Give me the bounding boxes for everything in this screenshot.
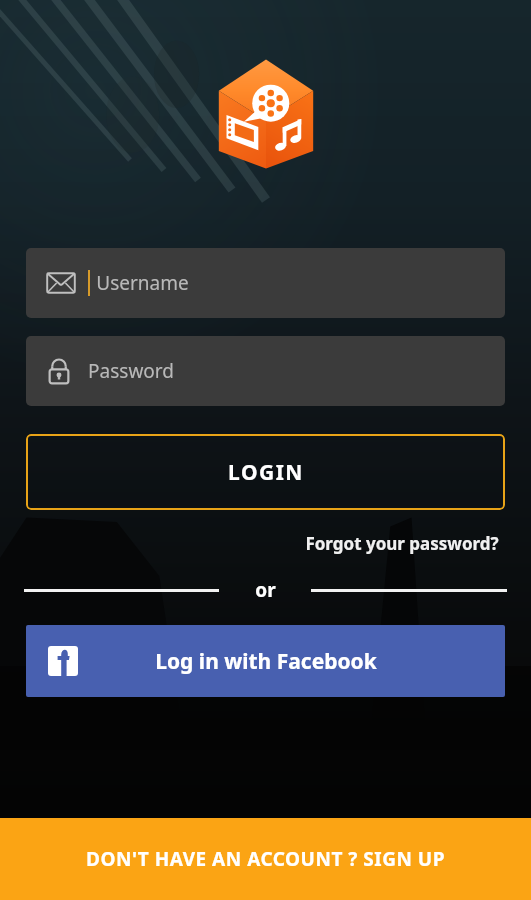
staticText: Forgot your password? <box>305 532 499 555</box>
staticText: or <box>255 577 276 603</box>
staticText: LOGIN <box>228 458 304 487</box>
staticText: Log in with Facebook <box>155 647 377 676</box>
staticText: Password <box>88 358 174 384</box>
button[interactable]: Log in with Facebook <box>26 625 505 697</box>
button[interactable]: Password <box>26 336 505 406</box>
staticText: Username <box>96 270 189 296</box>
button[interactable]: Forgot your password? <box>301 526 503 561</box>
button[interactable]: DON'T HAVE AN ACCOUNT ? SIGN UP <box>0 818 531 900</box>
button[interactable]: Username <box>26 248 505 318</box>
staticText: DON'T HAVE AN ACCOUNT ? SIGN UP <box>86 846 445 872</box>
button[interactable]: LOGIN <box>26 434 505 510</box>
